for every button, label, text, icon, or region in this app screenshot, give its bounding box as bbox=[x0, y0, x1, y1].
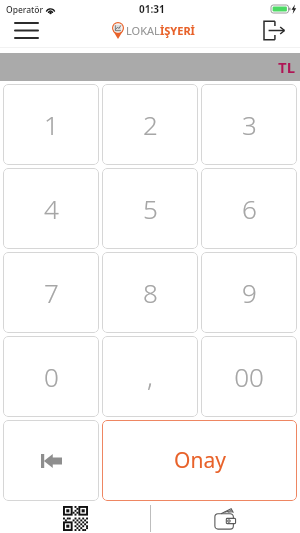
staticText: 9 bbox=[242, 275, 257, 310]
button[interactable]: 3 bbox=[201, 84, 297, 165]
button[interactable]: Wallet bbox=[150, 504, 300, 533]
button[interactable]: Backspace bbox=[3, 420, 99, 501]
button[interactable]: QR code bbox=[0, 504, 150, 533]
button[interactable]: Onay bbox=[102, 420, 297, 501]
staticText: 7 bbox=[44, 275, 59, 310]
button[interactable]: 1 bbox=[3, 84, 99, 165]
button[interactable]: 2 bbox=[102, 84, 198, 165]
staticText: 8 bbox=[143, 275, 158, 310]
button[interactable]: 4 bbox=[3, 168, 99, 249]
button[interactable]: Menu bbox=[0, 20, 53, 41]
staticText: 3 bbox=[242, 107, 257, 142]
button[interactable]: 8 bbox=[102, 252, 198, 333]
button[interactable]: Logout bbox=[248, 20, 300, 41]
staticText: 1 bbox=[44, 107, 59, 142]
button[interactable]: 00 bbox=[201, 336, 297, 417]
staticText: , bbox=[147, 359, 153, 394]
staticText: Onay bbox=[174, 446, 226, 475]
staticText: Operatör bbox=[6, 4, 44, 16]
staticText: 0 bbox=[44, 359, 59, 394]
button[interactable]: 9 bbox=[201, 252, 297, 333]
button[interactable]: , bbox=[102, 336, 198, 417]
button[interactable]: 0 bbox=[3, 336, 99, 417]
button[interactable]: 6 bbox=[201, 168, 297, 249]
staticText: İŞYERİ bbox=[160, 23, 195, 38]
staticText: 6 bbox=[242, 191, 257, 226]
staticText: 5 bbox=[143, 191, 158, 226]
staticText: 2 bbox=[143, 107, 158, 142]
button[interactable]: 7 bbox=[3, 252, 99, 333]
staticText: TL bbox=[278, 57, 296, 77]
staticText: 00 bbox=[234, 359, 264, 394]
staticText: LOKAL bbox=[126, 23, 160, 38]
staticText: 01:31 bbox=[139, 2, 165, 16]
button[interactable]: 5 bbox=[102, 168, 198, 249]
staticText: 4 bbox=[44, 191, 59, 226]
